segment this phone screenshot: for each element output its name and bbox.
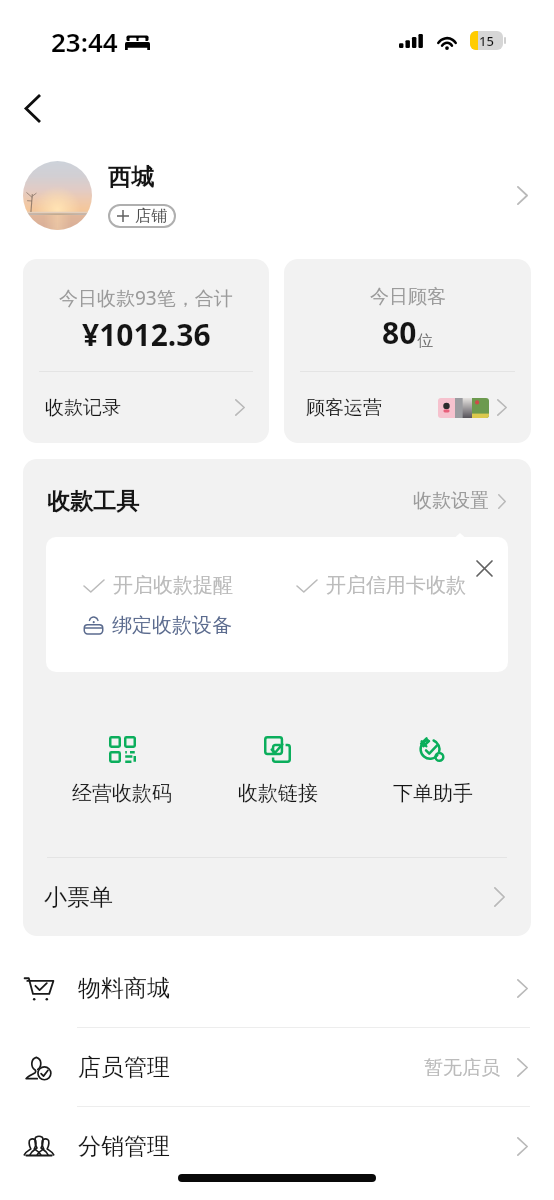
staticText: 收款工具: [47, 487, 139, 516]
staticText: 位: [417, 331, 433, 351]
staticText: 今日顾客: [370, 285, 446, 309]
button[interactable]: 店铺: [108, 204, 176, 228]
staticText: 顾客运营: [306, 396, 382, 420]
button[interactable]: 今日收款93笔，合计: [23, 259, 269, 443]
staticText: 西城: [108, 163, 154, 192]
staticText: 小票单: [44, 883, 113, 912]
button[interactable]: Back: [8, 84, 56, 132]
staticText: 80: [382, 312, 417, 353]
staticText: 收款链接: [238, 781, 318, 806]
staticText: 收款记录: [45, 396, 121, 420]
button[interactable]: 绑定收款设备: [83, 613, 232, 638]
staticText: 店员管理: [78, 1053, 170, 1082]
staticText: 店铺: [135, 206, 167, 226]
button[interactable]: 物料商城: [0, 949, 554, 1028]
staticText: 分销管理: [78, 1132, 170, 1161]
staticText: 23:44: [51, 24, 118, 59]
button[interactable]: 今日顾客: [284, 259, 531, 443]
staticText: 经营收款码: [72, 781, 172, 806]
staticText: 开启收款提醒: [113, 573, 233, 598]
button[interactable]: 下单助手: [355, 736, 510, 821]
button[interactable]: 分销管理: [0, 1107, 554, 1186]
staticText: 15: [479, 32, 494, 50]
button[interactable]: 经营收款码: [44, 736, 200, 821]
staticText: 收款设置: [413, 489, 489, 513]
staticText: 物料商城: [78, 974, 170, 1003]
button[interactable]: 店员管理: [0, 1028, 554, 1107]
button[interactable]: 西城: [0, 151, 554, 239]
button[interactable]: 收款链接: [200, 736, 355, 821]
staticText: 绑定收款设备: [112, 613, 232, 638]
button[interactable]: Close: [468, 552, 500, 584]
staticText: 今日收款93笔，合计: [59, 285, 233, 311]
staticText: 下单助手: [393, 781, 473, 806]
staticText: 暂无店员: [424, 1056, 500, 1080]
button[interactable]: 小票单: [23, 858, 531, 936]
button[interactable]: 收款设置: [413, 489, 506, 513]
staticText: 开启信用卡收款: [326, 573, 466, 598]
staticText: ¥1012.36: [82, 314, 211, 355]
